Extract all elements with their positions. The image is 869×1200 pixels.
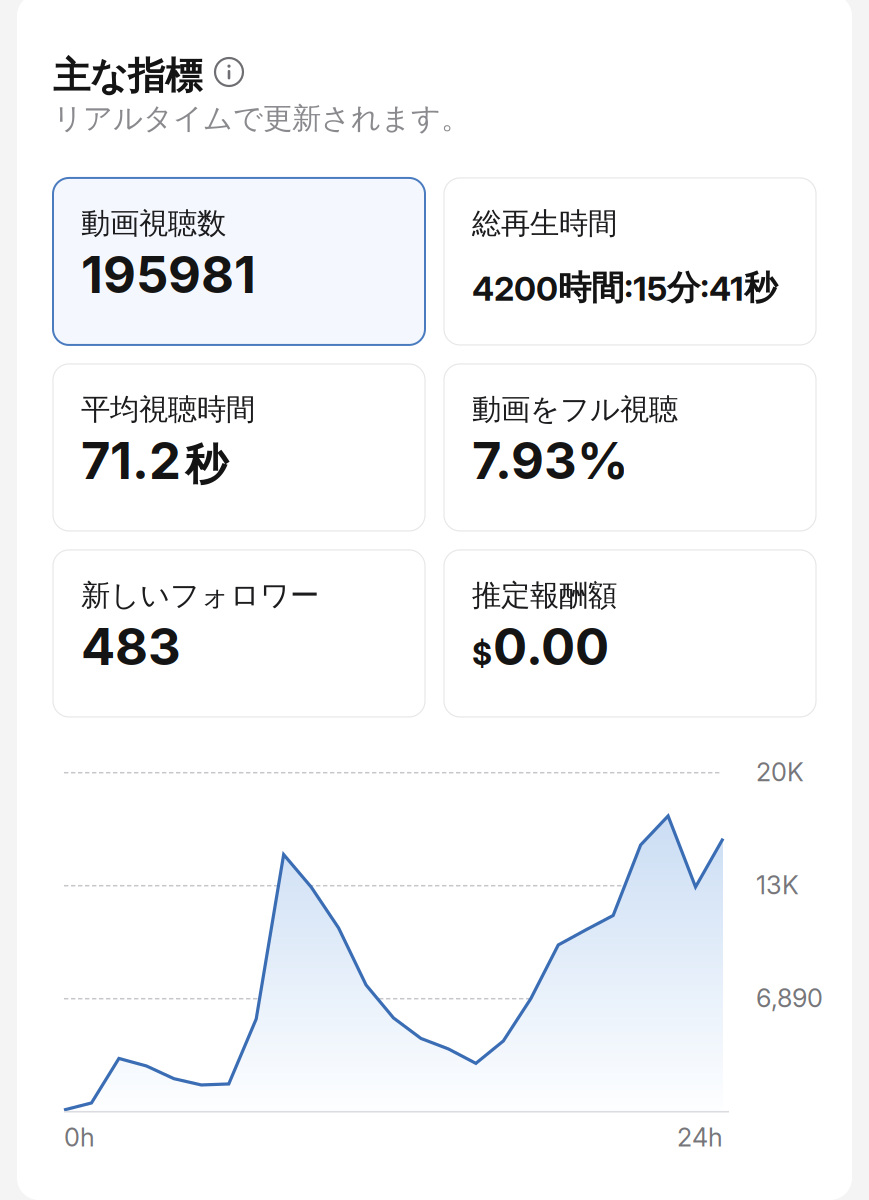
staticText: 7.93% bbox=[472, 430, 628, 491]
staticText: 71.2 bbox=[81, 430, 181, 491]
staticText: 483 bbox=[81, 616, 181, 677]
staticText: 推定報酬額 bbox=[472, 577, 617, 614]
staticText: リアルタイムで更新されます。 bbox=[53, 100, 470, 137]
button[interactable]: 総再生時間 bbox=[444, 178, 816, 345]
staticText: 主な指標 bbox=[53, 52, 202, 99]
staticText: 平均視聴時間 bbox=[81, 391, 255, 428]
button[interactable]: 推定報酬額 bbox=[444, 550, 816, 717]
button[interactable]: 動画視聴数 bbox=[53, 178, 425, 345]
staticText: 20K bbox=[756, 757, 804, 787]
staticText: 0.00 bbox=[493, 616, 609, 677]
staticText: $ bbox=[472, 635, 492, 672]
staticText: 総再生時間 bbox=[472, 205, 617, 242]
staticText: 0h bbox=[64, 1122, 95, 1153]
staticText: 6,890 bbox=[756, 983, 823, 1013]
staticText: 動画をフル視聴 bbox=[472, 391, 678, 428]
button[interactable]: 新しいフォロワー bbox=[53, 550, 425, 717]
staticText: 新しいフォロワー bbox=[81, 577, 319, 614]
staticText: 動画視聴数 bbox=[81, 205, 226, 242]
staticText: 4200時間:15分:41秒 bbox=[472, 267, 777, 309]
staticText: 195981 bbox=[81, 244, 256, 305]
button[interactable]: 平均視聴時間 bbox=[53, 364, 425, 531]
staticText: 13K bbox=[756, 870, 799, 900]
button[interactable]: 指標について bbox=[215, 58, 243, 94]
button[interactable]: 動画をフル視聴 bbox=[444, 364, 816, 531]
staticText: 秒 bbox=[185, 438, 228, 492]
staticText: 24h bbox=[677, 1122, 723, 1153]
